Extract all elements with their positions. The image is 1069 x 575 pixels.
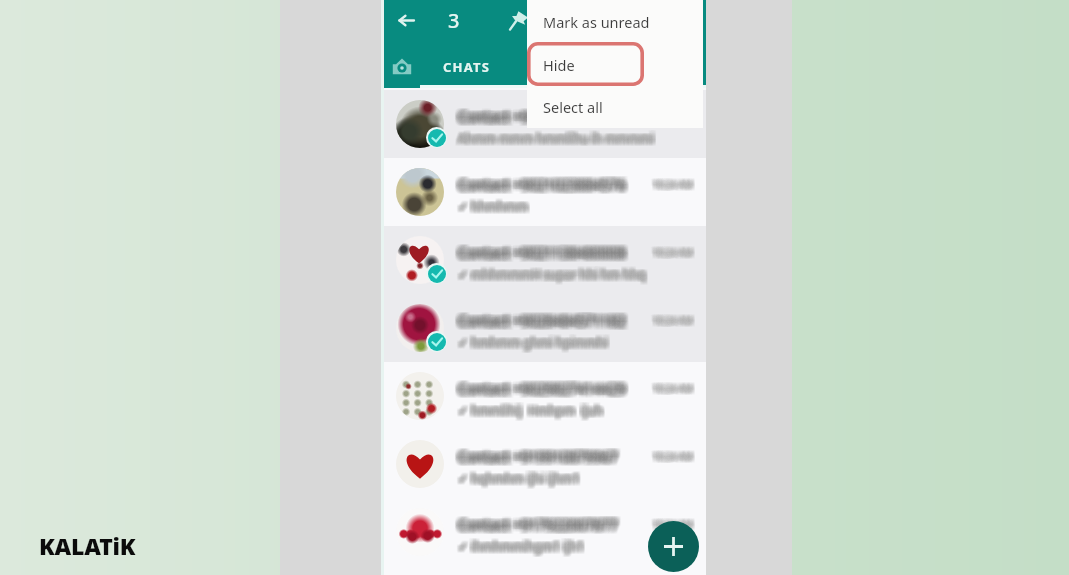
staticText: Contact +9029827414429 — [455, 377, 623, 396]
staticText: 10:24 AM — [651, 520, 691, 532]
staticText: Contact +9028484571182 — [462, 309, 630, 328]
button[interactable]: Contact +9028484571182 — [384, 294, 706, 362]
staticText: Contact +9028484571182 — [457, 315, 625, 334]
staticText: ✓ mhhmmmH supar hhi hm hhq — [457, 269, 645, 285]
staticText: 10:24 AM — [654, 247, 694, 259]
staticText: Contact +9028484571182 — [456, 307, 624, 326]
staticText: Contact +9029827414429 — [459, 377, 627, 396]
staticText: Contact +917922007877 — [457, 517, 617, 536]
button[interactable]: Contact +9 — [384, 90, 706, 158]
staticText: 10:24 AM — [650, 519, 690, 531]
staticText: ✓ hqhmhm ijhi ijhm1 — [455, 470, 577, 486]
button[interactable]: Contact +9029827414429 — [384, 362, 706, 430]
staticText: 10:24 AM — [653, 244, 693, 256]
staticText: Contact +917922007877 — [459, 513, 619, 532]
staticText: 10:24 AM — [650, 516, 690, 528]
staticText: ✓ ihmhmmihgm1 ijh1 — [456, 540, 582, 556]
staticText: ✓ hmhmm ghmi hpimmhi — [461, 331, 611, 347]
staticText: Contact +9021023884576 — [460, 173, 628, 192]
staticText: Contact +9021138480008 — [461, 247, 629, 266]
staticText: Contact +9028484571182 — [460, 308, 628, 327]
button[interactable]: Hide — [527, 51, 703, 79]
staticText: 10:24 AM — [653, 385, 693, 397]
staticText: ✓ hmmlihij Hmhpm ijuh — [459, 401, 604, 417]
staticText: Contact +9021023884576 — [459, 176, 627, 195]
staticText: Contact +9028484571182 — [461, 308, 629, 327]
button[interactable]: Contact +917922007877 — [384, 498, 706, 566]
staticText: Contact +9021138480008 — [459, 245, 627, 264]
staticText: ✓ hmhmm ghmi hpimmhi — [459, 335, 609, 351]
staticText: ✓ hmmlihij Hmhpm ijuh — [455, 402, 600, 418]
staticText: Contact +9028484571182 — [454, 311, 622, 330]
button[interactable]: Contact +9021023884576 — [384, 158, 706, 226]
button[interactable]: Mark as unread — [527, 8, 703, 36]
staticText: 10:24 AM — [656, 448, 696, 460]
staticText: ✓ ihmhmmihgm1 ijh1 — [461, 536, 587, 552]
staticText: Contact +9 — [462, 111, 534, 130]
staticText: ✓ hmhmm ghmi hpimmhi — [457, 332, 607, 348]
staticText: 10:24 AM — [654, 452, 694, 464]
button[interactable]: Contact +9021138480008 — [384, 226, 706, 294]
staticText: Contact +9 — [455, 111, 527, 130]
staticText: Contact +9 — [459, 107, 531, 126]
staticText: Contact +917922007877 — [460, 514, 620, 533]
staticText: ✓ mhhmmmH supar hhi hm hhq — [455, 269, 643, 285]
staticText: Ahmm mmm hmmlihu ih mmmmi — [460, 129, 656, 145]
staticText: 10:24 AM — [656, 248, 696, 260]
staticText: Contact +9021023884576 — [458, 174, 626, 193]
staticText: ✓ hmhmm ghmi hpimmhi — [459, 334, 609, 350]
staticText: Contact +9021138480008 — [460, 243, 628, 262]
staticText: ✓ mhhmmmH supar hhi hm hhq — [460, 264, 648, 280]
staticText: ✓ mhhmmmH supar hhi hm hhq — [460, 267, 648, 283]
staticText: Contact +9 — [461, 108, 533, 127]
staticText: Contact +9029827414429 — [458, 378, 626, 397]
staticText: 10:24 AM — [650, 315, 690, 327]
staticText: ✓ hhmhmm — [461, 199, 531, 215]
staticText: Contact +917922007877 — [455, 517, 615, 536]
staticText: ✓ hhmhmm — [455, 196, 525, 212]
staticText: 10:24 AM — [656, 317, 696, 329]
staticText: 10:24 AM — [652, 452, 692, 464]
staticText: 10:24 AM — [653, 519, 693, 531]
button[interactable]: Back — [392, 6, 420, 34]
staticText: Contact +917922007877 — [454, 513, 614, 532]
staticText: ✓ mhhmmmH supar hhi hm hhq — [460, 265, 648, 281]
staticText: Contact +919910879967 — [456, 444, 616, 463]
staticText: 10:24 AM — [650, 385, 690, 397]
button[interactable]: Contact +919910879967 — [384, 430, 706, 498]
staticText: 10:24 AM — [655, 384, 695, 396]
button[interactable]: Select all — [527, 93, 703, 121]
staticText: ✓ mhhmmmH supar hhi hm hhq — [460, 269, 648, 285]
staticText: Contact +919910879967 — [455, 447, 615, 466]
staticText: 10:24 AM — [654, 521, 694, 533]
staticText: Contact +9028484571182 — [459, 308, 627, 327]
staticText: Ahmm mmm hmmlihu ih mmmmi — [456, 130, 652, 146]
staticText: 10:24 AM — [653, 315, 693, 327]
staticText: Contact +9021023884576 — [454, 176, 622, 195]
staticText: Contact +9029827414429 — [456, 378, 624, 397]
staticText: 10:24 AM — [656, 451, 696, 463]
staticText: Contact +9 — [460, 105, 532, 124]
staticText: 10:24 AM — [655, 314, 695, 326]
staticText: ✓ hmhmm ghmi hpimmhi — [460, 331, 610, 347]
staticText: ✓ ihmhmmihgm1 ijh1 — [460, 538, 586, 554]
staticText: Contact +9021138480008 — [454, 242, 622, 261]
staticText: 10:24 AM — [655, 449, 695, 461]
staticText: Contact +9028484571182 — [462, 311, 630, 330]
staticText: 10:24 AM — [651, 448, 691, 460]
button[interactable]: Camera — [388, 53, 416, 81]
staticText: ✓ mhhmmmH supar hhi hm hhq — [459, 265, 647, 281]
staticText: Contact +9021023884576 — [457, 179, 625, 198]
staticText: Contact +9021138480008 — [454, 247, 622, 266]
button[interactable]: Pin — [504, 6, 532, 34]
staticText: Contact +9 — [458, 109, 530, 128]
staticText: 10:24 AM — [650, 249, 690, 261]
button[interactable]: CHATS — [420, 49, 514, 85]
button[interactable]: New chat — [648, 521, 699, 572]
staticText: Contact +9021138480008 — [460, 245, 628, 264]
staticText: ✓ hmhmm ghmi hpimmhi — [459, 336, 609, 352]
staticText: Contact +919910879967 — [461, 444, 621, 463]
staticText: Contact +9021138480008 — [455, 246, 623, 265]
staticText: Contact +9029827414429 — [454, 381, 622, 400]
button[interactable]: 3 — [441, 6, 467, 34]
